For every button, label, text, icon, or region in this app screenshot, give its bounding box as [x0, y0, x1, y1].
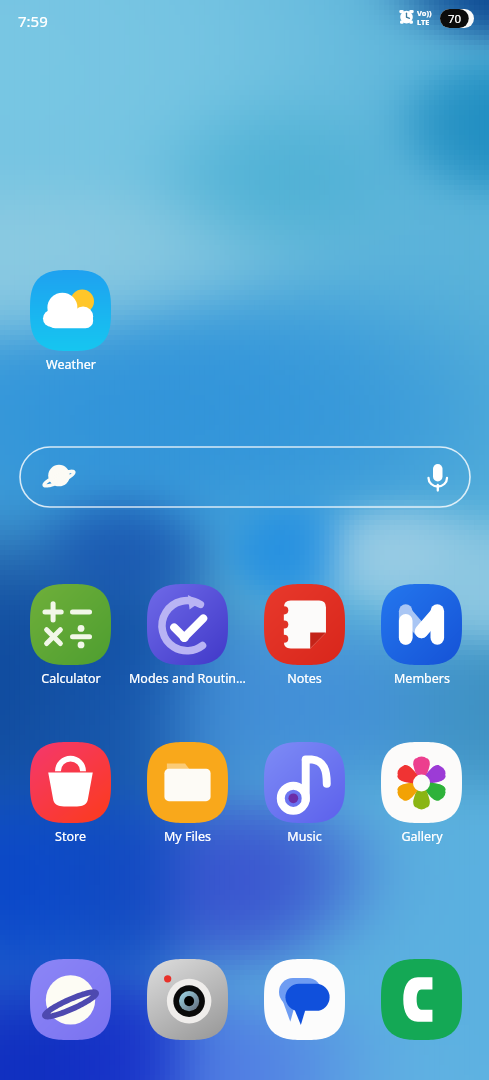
staticText: Weather	[46, 356, 96, 373]
button[interactable]: Modes and Routines	[147, 584, 228, 665]
staticText: 7:59	[18, 11, 48, 31]
button[interactable]: Phone	[381, 959, 462, 1040]
staticText: Members	[394, 670, 450, 687]
button[interactable]: Members	[381, 584, 462, 665]
staticText: Store	[55, 828, 86, 845]
staticText: 70	[448, 11, 462, 27]
button[interactable]: Notes	[264, 584, 345, 665]
button[interactable]: Messages	[264, 959, 345, 1040]
button[interactable]: Search	[20, 447, 470, 507]
staticText: Notes	[287, 670, 322, 687]
staticText: Vo))	[417, 8, 432, 18]
button[interactable]: Weather	[30, 270, 111, 351]
staticText: My Files	[164, 828, 211, 845]
button[interactable]: My Files	[147, 742, 228, 823]
button[interactable]: Calculator	[30, 584, 111, 665]
staticText: LTE	[417, 17, 430, 27]
staticText: Gallery	[401, 828, 443, 845]
staticText: Calculator	[41, 670, 101, 687]
button[interactable]: Internet	[30, 959, 111, 1040]
button[interactable]: Gallery	[381, 742, 462, 823]
button[interactable]: Camera	[147, 959, 228, 1040]
staticText: Modes and Routines	[129, 670, 246, 687]
button[interactable]: Music	[264, 742, 345, 823]
staticText: Music	[287, 828, 322, 845]
button[interactable]: Store	[30, 742, 111, 823]
